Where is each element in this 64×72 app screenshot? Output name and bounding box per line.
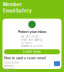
staticText: Member <box>3 2 22 7</box>
staticText: We will never email you asking for your … <box>20 35 43 48</box>
button[interactable]: Learn more <box>4 49 60 54</box>
staticText: Email Safety <box>3 8 32 14</box>
staticText: Check the sender address and look for sp… <box>4 61 19 72</box>
staticText: How to spot a scam email <box>4 56 46 60</box>
staticText: Protect your inbox <box>17 30 46 34</box>
staticText: Learn more <box>23 50 41 54</box>
